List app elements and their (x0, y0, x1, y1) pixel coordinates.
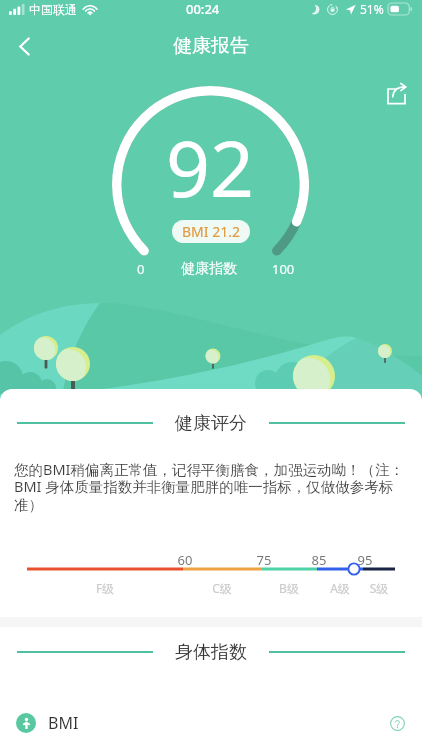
staticText: S级 (363, 580, 395, 596)
staticText: 51% (360, 1, 384, 17)
staticText: 0 (137, 260, 145, 278)
staticText: B级 (273, 580, 305, 596)
staticText: 75 (251, 551, 277, 569)
button[interactable]: Share (376, 74, 416, 114)
staticText: 中国联通 (29, 2, 77, 17)
staticText: BMI 21.2 (182, 222, 240, 241)
staticText: 60 (172, 551, 198, 569)
staticText: 身体指数 (175, 641, 247, 664)
staticText: F级 (89, 580, 121, 596)
staticText: 85 (306, 551, 332, 569)
staticText: 健康报告 (173, 34, 249, 58)
staticText: BMI (48, 712, 79, 734)
staticText: 100 (272, 260, 295, 278)
staticText: 健康指数 (181, 260, 237, 278)
button[interactable]: Back (4, 26, 44, 66)
staticText: A级 (324, 580, 356, 596)
staticText: 92 (166, 115, 255, 220)
staticText: 您的BMI稍偏离正常值，记得平衡膳食，加强运动呦！（注：BMI 身体质量指数并非… (14, 459, 408, 514)
staticText: 健康评分 (175, 412, 247, 435)
button[interactable]: Help (386, 712, 408, 734)
button[interactable]: BMI (16, 712, 408, 734)
staticText: 95 (352, 551, 378, 569)
staticText: 00:24 (186, 0, 220, 18)
staticText: C级 (206, 580, 238, 596)
